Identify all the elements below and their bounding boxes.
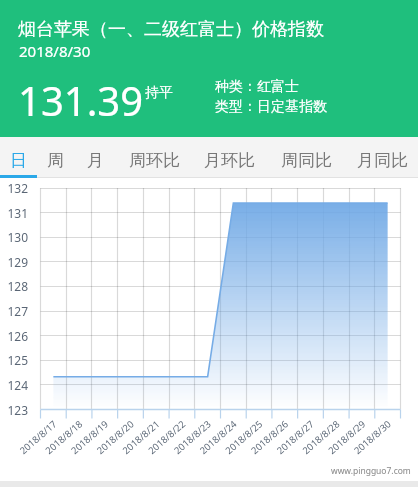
staticText: 烟台苹果（一、二级红富士）价格指数 (18, 18, 324, 41)
staticText: 月环比 (204, 150, 255, 171)
staticText: 类型：日定基指数 (215, 98, 327, 116)
staticText: 周环比 (129, 150, 180, 171)
staticText: 月 (87, 150, 104, 171)
staticText: 周同比 (281, 150, 332, 171)
staticText: 周 (47, 150, 64, 171)
button[interactable]: 日 (10, 146, 27, 175)
staticText: 日 (10, 150, 27, 171)
staticText: 持平 (145, 84, 173, 102)
staticText: 月同比 (357, 150, 408, 171)
button[interactable]: 月 (87, 146, 104, 175)
button[interactable]: 周 (47, 146, 64, 175)
staticText: 2018/8/30 (19, 41, 91, 61)
staticText: 131.39 (18, 73, 144, 127)
button[interactable]: 周环比 (129, 146, 180, 175)
button[interactable]: 月同比 (357, 146, 408, 175)
staticText: 种类：红富士 (215, 78, 299, 96)
button[interactable]: 月环比 (204, 146, 255, 175)
button[interactable]: 周同比 (281, 146, 332, 175)
